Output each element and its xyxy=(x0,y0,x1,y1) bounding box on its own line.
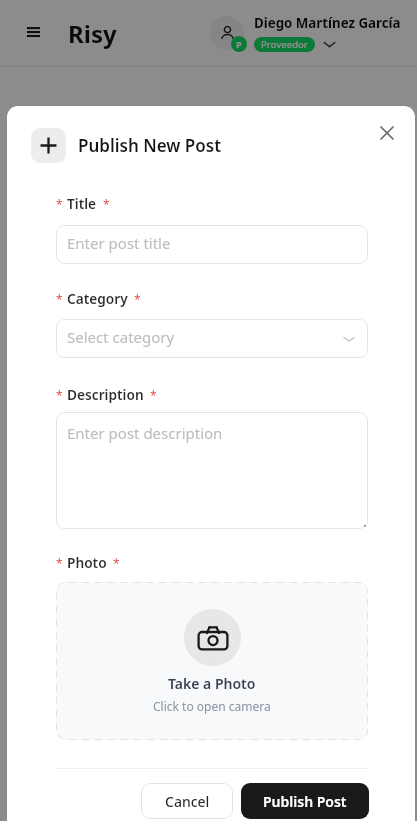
staticText: * xyxy=(150,387,157,403)
button[interactable]: Cancel xyxy=(141,783,233,819)
staticText: * xyxy=(103,196,110,212)
staticText: * xyxy=(134,291,141,307)
staticText: Enter post description xyxy=(67,423,223,443)
button[interactable]: Enter post title xyxy=(56,225,368,264)
staticText: Proveedor xyxy=(261,38,308,51)
staticText: Cancel xyxy=(165,792,210,811)
staticText: * xyxy=(56,555,63,571)
staticText: Risy xyxy=(68,17,117,50)
staticText: Select category xyxy=(67,327,175,347)
staticText: * xyxy=(56,196,63,212)
button[interactable]: Select category xyxy=(56,319,368,358)
staticText: * xyxy=(56,291,63,307)
staticText: Take a Photo xyxy=(168,674,256,693)
staticText: Click to open camera xyxy=(153,698,271,714)
button[interactable]: Take a Photo xyxy=(56,582,368,740)
staticText: Publish New Post xyxy=(78,134,222,157)
staticText: Diego Martínez García xyxy=(254,14,401,32)
staticText: * xyxy=(56,387,63,403)
button[interactable]: Close xyxy=(373,119,401,147)
staticText: Enter post title xyxy=(67,233,171,253)
staticText: Photo xyxy=(67,553,107,572)
button[interactable]: Menu xyxy=(20,20,46,46)
button[interactable]: Publish Post xyxy=(241,783,369,819)
staticText: Title xyxy=(67,194,97,213)
staticText: Description xyxy=(67,385,144,404)
staticText: * xyxy=(113,555,120,571)
staticText: Category xyxy=(67,289,128,308)
staticText: P xyxy=(236,38,242,50)
button[interactable]: Enter post description xyxy=(56,412,368,529)
staticText: Publish Post xyxy=(263,792,347,811)
